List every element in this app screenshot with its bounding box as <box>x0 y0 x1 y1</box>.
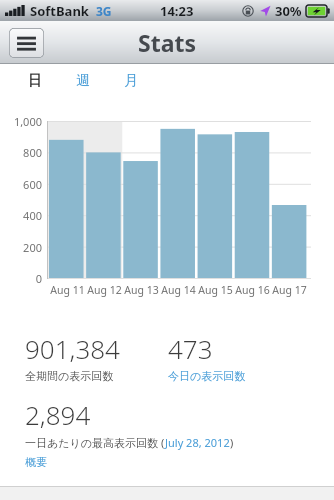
button[interactable]: 今日の表示回数 <box>168 369 246 383</box>
button[interactable]: 概要 <box>25 455 47 469</box>
staticText: 473 <box>168 331 213 366</box>
staticText: 0 <box>35 271 42 285</box>
button[interactable]: 月 <box>119 68 143 94</box>
staticText: Aug 17 <box>272 283 307 297</box>
staticText: 概要 <box>25 455 47 469</box>
staticText: 今日の表示回数 <box>168 369 246 383</box>
staticText: 14:23 <box>160 2 194 20</box>
staticText: Aug 14 <box>161 283 196 297</box>
staticText: 日 <box>28 72 42 90</box>
staticText: Aug 11 <box>50 283 85 297</box>
staticText: 800 <box>23 145 42 159</box>
staticText: ) <box>230 435 234 450</box>
staticText: 200 <box>23 240 42 254</box>
staticText: 901,384 <box>25 331 120 366</box>
staticText: SoftBank <box>30 2 89 20</box>
staticText: Stats <box>138 27 196 58</box>
staticText: 1,000 <box>13 114 42 128</box>
button[interactable]: 日 <box>23 68 47 94</box>
staticText: 600 <box>23 177 42 191</box>
staticText: 月 <box>124 72 138 90</box>
staticText: 一日あたりの最高表示回数 ( <box>25 435 165 450</box>
staticText: 全期間の表示回数 <box>25 369 114 383</box>
button[interactable]: 週 <box>71 68 95 94</box>
staticText: Aug 13 <box>124 283 159 297</box>
staticText: Aug 12 <box>87 283 122 297</box>
staticText: 3G <box>96 3 112 19</box>
staticText: July 28, 2012 <box>165 435 230 450</box>
staticText: 2,894 <box>25 397 91 432</box>
staticText: 30% <box>275 2 302 20</box>
button[interactable]: July 28, 2012 <box>165 435 230 450</box>
staticText: 400 <box>23 208 42 222</box>
staticText: Aug 16 <box>235 283 270 297</box>
button[interactable]: Menu <box>9 28 44 58</box>
staticText: Aug 15 <box>198 283 233 297</box>
staticText: 週 <box>76 72 90 90</box>
